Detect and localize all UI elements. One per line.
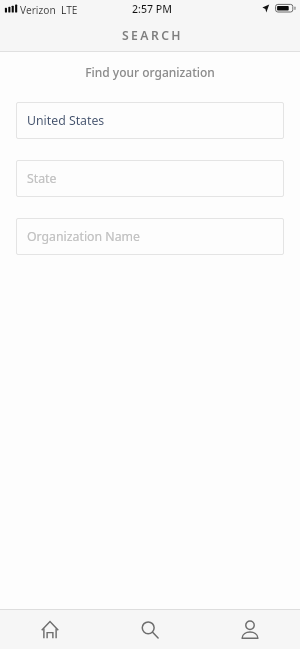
staticText: SEARCH [122, 27, 183, 44]
button[interactable]: Home [0, 610, 100, 649]
staticText: LTE [61, 3, 78, 17]
button[interactable]: Search [100, 610, 200, 649]
staticText: 2:57 PM [2, 2, 300, 16]
staticText: State [27, 170, 57, 187]
button[interactable]: Profile [200, 610, 300, 649]
button[interactable]: State [16, 160, 284, 197]
staticText: Organization Name [27, 228, 140, 245]
staticText: Find your organization [0, 64, 300, 80]
staticText: United States [27, 112, 105, 129]
staticText: Verizon [20, 3, 56, 17]
button[interactable]: United States [16, 102, 284, 139]
button[interactable]: Organization Name [16, 218, 284, 255]
